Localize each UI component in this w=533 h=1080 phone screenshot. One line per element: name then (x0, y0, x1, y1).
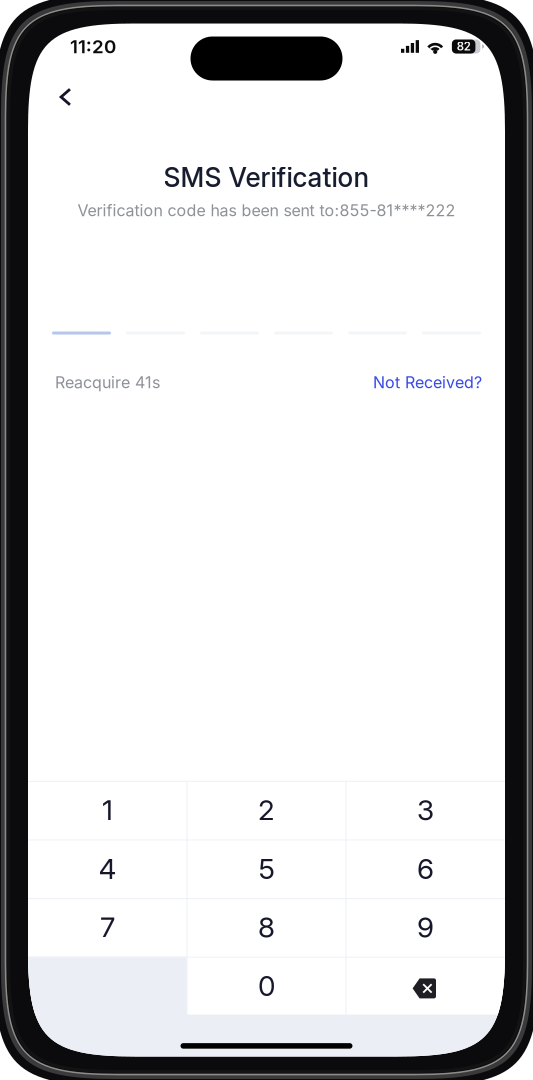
staticText: 6 (417, 852, 434, 886)
staticText: Not Received? (373, 373, 482, 392)
button[interactable]: 0 (187, 957, 346, 1015)
button[interactable]: 1 (28, 781, 187, 839)
button[interactable]: 2 (187, 781, 346, 839)
staticText: SMS Verification (163, 161, 369, 193)
staticText: 82 (457, 40, 471, 53)
button[interactable]: 9 (346, 898, 505, 957)
staticText: Reacquire 41s (55, 373, 160, 392)
button[interactable]: Delete (346, 957, 505, 1015)
button[interactable]: 5 (187, 839, 346, 898)
staticText: 3 (417, 793, 434, 827)
button[interactable]: 3 (346, 781, 505, 839)
staticText: 2 (258, 793, 275, 827)
staticText: 11:20 (70, 35, 116, 58)
button[interactable]: Not Received? (373, 373, 482, 392)
staticText: 4 (98, 852, 116, 886)
staticText: 8 (258, 910, 275, 944)
button[interactable]: 7 (28, 898, 187, 957)
staticText: 5 (258, 852, 274, 886)
staticText: 1 (102, 793, 113, 827)
button[interactable]: 4 (28, 839, 187, 898)
staticText: 7 (100, 910, 115, 944)
button[interactable]: 8 (187, 898, 346, 957)
staticText: Verification code has been sent to:855-8… (77, 201, 455, 220)
staticText: 0 (258, 969, 275, 1003)
staticText: 9 (417, 910, 434, 944)
button[interactable]: Back (43, 77, 87, 117)
button[interactable]: 6 (346, 839, 505, 898)
